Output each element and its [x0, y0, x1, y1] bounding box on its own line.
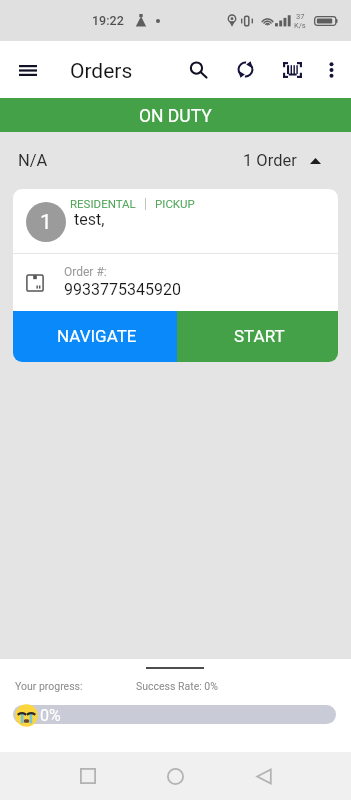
button[interactable]: Back	[240, 756, 287, 796]
button[interactable]: START	[177, 311, 338, 362]
button[interactable]: Search	[176, 48, 220, 92]
staticText: ON DUTY	[139, 106, 212, 127]
staticText: Success Rate: 0%	[136, 680, 218, 692]
button[interactable]: Collapse orders	[243, 144, 333, 177]
staticText: 0%	[40, 706, 61, 725]
staticText: K/s	[294, 21, 306, 30]
staticText: test,	[74, 210, 105, 229]
button[interactable]: Open navigation menu	[3, 51, 52, 90]
staticText: Your progress:	[15, 680, 83, 692]
staticText: START	[234, 326, 285, 346]
button[interactable]: Refresh	[224, 48, 267, 91]
staticText: NAVIGATE	[57, 326, 137, 346]
button[interactable]: Scan barcode	[271, 49, 313, 91]
staticText: N/A	[18, 151, 48, 170]
staticText: Order #:	[64, 265, 107, 279]
staticText: 1 Order	[243, 151, 297, 170]
staticText: 19:22	[92, 13, 124, 28]
staticText: PICKUP	[155, 197, 195, 210]
staticText: 9933775345920	[64, 280, 181, 299]
staticText: 37	[296, 12, 305, 21]
staticText: RESIDENTAL	[70, 197, 136, 210]
button[interactable]: NAVIGATE	[13, 311, 177, 362]
button[interactable]: ON DUTY	[0, 98, 351, 132]
button[interactable]: Home	[152, 756, 199, 796]
staticText: 1	[40, 210, 52, 235]
button[interactable]: More options	[312, 50, 351, 89]
staticText: Orders	[70, 59, 133, 84]
button[interactable]: Recent apps	[64, 756, 111, 796]
